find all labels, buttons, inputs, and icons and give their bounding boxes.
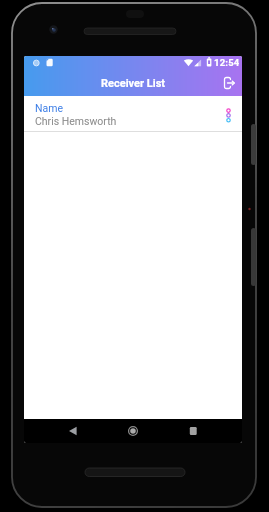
staticText: 12:54 bbox=[214, 57, 240, 68]
button[interactable] bbox=[53, 419, 93, 443]
staticText: Chris Hemsworth bbox=[35, 115, 117, 127]
button[interactable] bbox=[173, 419, 213, 443]
staticText: Receiver List bbox=[24, 77, 242, 90]
staticText: Name bbox=[35, 102, 63, 114]
button[interactable] bbox=[113, 419, 153, 443]
button[interactable] bbox=[220, 107, 237, 128]
button[interactable] bbox=[218, 72, 242, 94]
button[interactable]: Name bbox=[24, 96, 242, 131]
